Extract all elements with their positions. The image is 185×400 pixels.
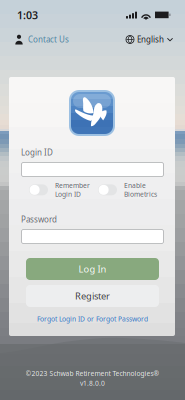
staticText: 1:03 (17, 8, 38, 22)
button[interactable]: Forgot Login ID or Forgot Password (26, 314, 159, 324)
staticText: Contact Us (28, 34, 69, 45)
staticText: Log In (78, 263, 106, 275)
staticText: v1.8.0.0 (80, 379, 105, 388)
staticText: Forgot Login ID or Forgot Password (37, 315, 148, 323)
button[interactable]: English (126, 34, 173, 45)
staticText: Remember (55, 181, 90, 190)
staticText: Enable (124, 181, 146, 190)
staticText: Password (21, 214, 57, 225)
staticText: Login ID (21, 147, 53, 158)
staticText: Biometrics (124, 190, 157, 199)
button[interactable]: Enable (98, 181, 157, 199)
staticText: Register (75, 290, 110, 302)
button[interactable]: Log In (26, 258, 159, 280)
button[interactable]: Contact Us (15, 34, 69, 45)
button[interactable]: Register (26, 285, 159, 307)
staticText: Login ID (55, 190, 81, 199)
staticText: English (137, 34, 164, 45)
button[interactable]: Remember (29, 181, 90, 199)
staticText: ©2023 Schwab Retirement Technologies® (25, 369, 159, 378)
